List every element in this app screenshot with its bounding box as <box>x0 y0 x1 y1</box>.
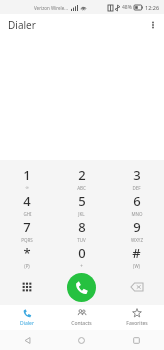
staticText: Verizon Wirele... <box>34 5 68 11</box>
staticText: 12:26 <box>145 4 160 11</box>
staticText: + <box>80 263 83 269</box>
staticText: 1 <box>23 166 31 184</box>
button[interactable]: 1 <box>0 165 54 191</box>
staticText: # <box>132 244 141 262</box>
staticText: 5 <box>78 192 86 210</box>
staticText: MNO <box>131 211 143 217</box>
staticText: 2 <box>78 166 86 184</box>
staticText: DEF <box>132 185 141 191</box>
staticText: ABC <box>77 185 86 191</box>
staticText: 6 <box>133 192 141 210</box>
staticText: Dialer <box>20 320 34 327</box>
button[interactable]: Home <box>54 330 109 350</box>
staticText: (P) <box>24 263 30 269</box>
button[interactable]: 4 <box>0 191 54 217</box>
button[interactable]: 9 <box>109 217 164 243</box>
staticText: (W) <box>133 263 140 269</box>
button[interactable]: Contacts <box>54 305 109 330</box>
staticText: Contacts <box>71 320 92 327</box>
button[interactable]: More options <box>142 14 164 36</box>
button[interactable]: 6 <box>109 191 164 217</box>
staticText: PQRS <box>21 237 33 243</box>
button[interactable]: Delete <box>109 269 164 305</box>
staticText: Dialer <box>8 18 36 32</box>
staticText: * <box>23 244 31 262</box>
button[interactable]: 0 <box>54 243 109 269</box>
staticText: 4 <box>23 192 31 210</box>
staticText: 7 <box>23 218 31 236</box>
staticText: WXYZ <box>131 237 143 243</box>
staticText: 48% <box>122 4 132 11</box>
staticText: Favorites <box>126 320 148 327</box>
button[interactable]: 2 <box>54 165 109 191</box>
button[interactable]: * <box>0 243 54 269</box>
staticText: 0 <box>78 244 86 262</box>
button[interactable]: 5 <box>54 191 109 217</box>
staticText: 9 <box>133 218 141 236</box>
staticText: JKL <box>78 211 85 217</box>
button[interactable]: 8 <box>54 217 109 243</box>
button[interactable]: 7 <box>0 217 54 243</box>
button[interactable]: Hide keypad <box>0 269 54 305</box>
button[interactable]: # <box>109 243 164 269</box>
button[interactable]: Recents <box>109 330 164 350</box>
button[interactable]: 3 <box>109 165 164 191</box>
staticText: ∞ <box>25 185 29 190</box>
button[interactable]: Back <box>0 330 54 350</box>
staticText: 8 <box>78 218 86 236</box>
staticText: 3 <box>133 166 141 184</box>
staticText: TUV <box>77 237 86 243</box>
button[interactable]: Dialer <box>0 305 54 330</box>
button[interactable]: Call <box>67 273 96 302</box>
staticText: GHI <box>23 211 32 217</box>
button[interactable]: Favorites <box>109 305 164 330</box>
